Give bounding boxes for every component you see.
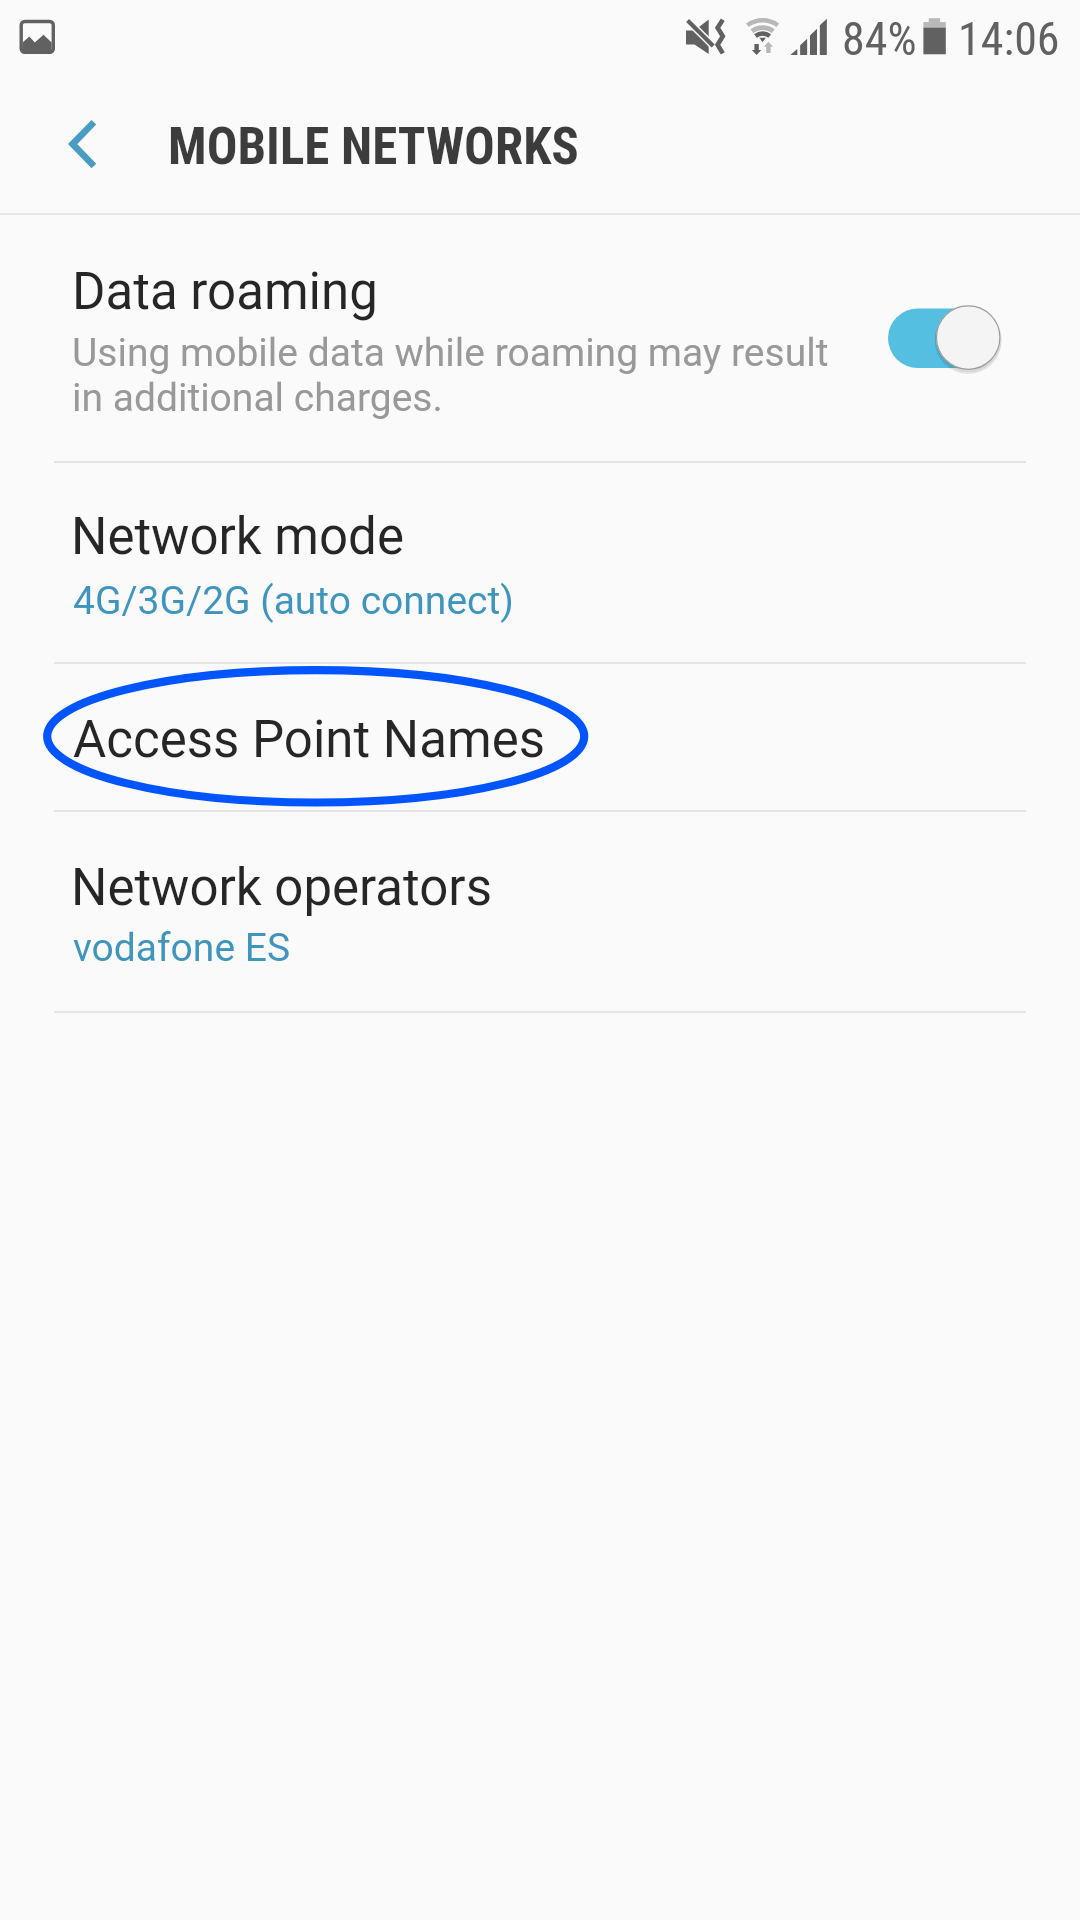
staticText: Network mode	[71, 507, 404, 567]
staticText: 84%	[842, 12, 917, 66]
button[interactable]: Access Point Names	[0, 664, 1080, 810]
staticText: Access Point Names	[73, 710, 546, 770]
staticText: vodafone ES	[73, 925, 291, 971]
button[interactable]: Data roaming	[0, 215, 1080, 461]
staticText: Using mobile data while roaming may resu…	[72, 330, 829, 376]
staticText: MOBILE NETWORKS	[168, 117, 579, 177]
button[interactable]: Network mode	[0, 463, 1080, 662]
button[interactable]: Network operators	[0, 812, 1080, 1011]
staticText: 14:06	[958, 12, 1060, 66]
staticText: in additional charges.	[72, 375, 443, 421]
staticText: Data roaming	[72, 262, 378, 322]
button[interactable]: Navigate up	[46, 106, 130, 190]
button[interactable]: Data roaming, on	[884, 303, 1004, 375]
staticText: 4G/3G/2G (auto connect)	[73, 578, 514, 624]
staticText: Network operators	[71, 858, 492, 918]
